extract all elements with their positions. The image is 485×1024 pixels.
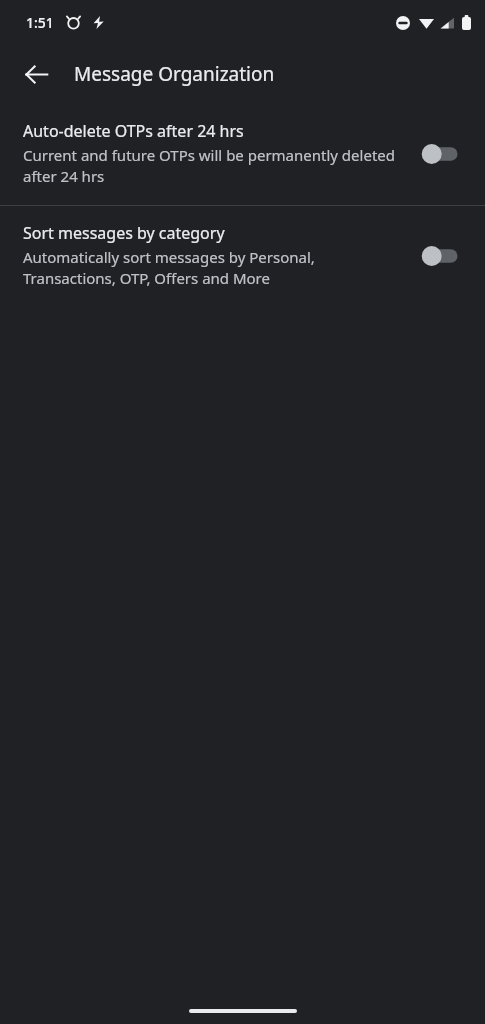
staticText: Automatically sort messages by Personal,… bbox=[23, 247, 399, 289]
button[interactable]: Toggle bbox=[415, 239, 467, 273]
staticText: Current and future OTPs will be permanen… bbox=[23, 145, 399, 187]
button[interactable]: Back bbox=[12, 50, 60, 98]
button[interactable]: Toggle bbox=[415, 137, 467, 171]
staticText: 1:51 bbox=[26, 13, 54, 32]
staticText: Auto-delete OTPs after 24 hrs bbox=[23, 120, 244, 142]
button[interactable]: Auto-delete OTPs after 24 hrs bbox=[0, 104, 485, 205]
staticText: Sort messages by category bbox=[23, 222, 225, 244]
staticText: Message Organization bbox=[74, 61, 275, 87]
button[interactable]: Sort messages by category bbox=[0, 206, 485, 307]
